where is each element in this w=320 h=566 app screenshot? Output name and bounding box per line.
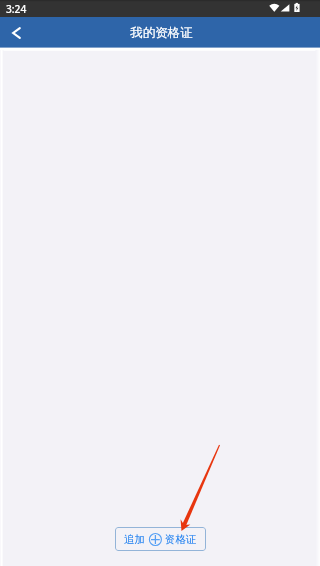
staticText: 我的资格证 bbox=[130, 25, 193, 41]
button[interactable]: 追加 bbox=[115, 527, 206, 551]
button[interactable]: Back bbox=[0, 17, 31, 48]
staticText: 追加 bbox=[124, 533, 145, 546]
staticText: 3:24 bbox=[6, 2, 27, 16]
staticText: 资格证 bbox=[165, 533, 197, 546]
